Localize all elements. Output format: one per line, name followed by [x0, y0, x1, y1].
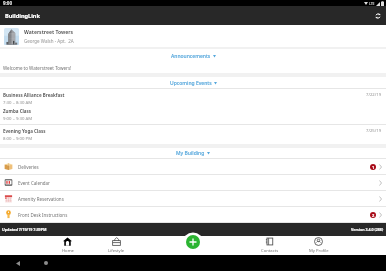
button[interactable]: Lifestyle: [92, 236, 141, 255]
staticText: Front Desk Instructions: [18, 212, 68, 218]
staticText: My Profile: [309, 248, 329, 254]
staticText: 8:00 – 9:00 PM: [3, 135, 33, 141]
button[interactable]: Waterstreet Towers: [0, 25, 386, 47]
staticText: Version 3.4.0 (288): [351, 227, 384, 232]
staticText: Contacts: [261, 248, 279, 254]
button[interactable]: My Building: [0, 148, 386, 158]
button[interactable]: Home: [41, 258, 51, 268]
staticText: Home: [62, 248, 74, 254]
button[interactable]: Contacts: [245, 236, 294, 255]
button[interactable]: My Profile: [294, 236, 343, 255]
button[interactable]: Home: [43, 236, 92, 255]
button[interactable]: Evening Yoga Class: [0, 125, 386, 144]
staticText: BuildingLink: [5, 12, 40, 20]
staticText: Deliveries: [18, 164, 39, 170]
staticText: Announcements: [171, 53, 211, 60]
staticText: 7/25/19: [366, 128, 382, 134]
button[interactable]: Welcome to Waterstreet Towers!: [0, 63, 386, 73]
staticText: Welcome to Waterstreet Towers!: [3, 65, 72, 71]
staticText: Updated 7/19/19 7:39PM: [2, 227, 47, 232]
staticText: 1: [372, 165, 375, 170]
button[interactable]: Business Alliance Breakfast: [0, 89, 386, 124]
staticText: My Building: [176, 150, 205, 157]
staticText: 2: [372, 213, 375, 218]
button[interactable]: Event Calendar: [0, 175, 386, 190]
staticText: Amenity Reservations: [18, 196, 64, 202]
staticText: 9:00: [3, 0, 12, 6]
staticText: LTE: [369, 1, 375, 6]
staticText: Business Alliance Breakfast: [3, 92, 65, 98]
button[interactable]: Upcoming Events: [0, 78, 386, 88]
button[interactable]: Add: [186, 235, 200, 249]
button[interactable]: Front Desk Instructions: [0, 207, 386, 222]
staticText: Waterstreet Towers: [24, 29, 73, 36]
button[interactable]: Refresh: [370, 8, 386, 24]
staticText: Evening Yoga Class: [3, 128, 46, 134]
button[interactable]: Back: [13, 258, 23, 268]
staticText: Lifestyle: [108, 248, 125, 254]
button[interactable]: Announcements: [0, 51, 386, 61]
staticText: 7/22/19: [366, 92, 382, 98]
staticText: 9:00 – 9:30 AM: [3, 115, 33, 121]
staticText: Upcoming Events: [170, 80, 212, 87]
staticText: George Walsh - Apt. 2A: [24, 38, 74, 44]
staticText: 7:30 – 8:30 AM: [3, 99, 33, 105]
staticText: Event Calendar: [18, 180, 50, 186]
staticText: Zumba Class: [3, 108, 32, 114]
button[interactable]: Amenity Reservations: [0, 191, 386, 206]
button[interactable]: Deliveries: [0, 159, 386, 174]
